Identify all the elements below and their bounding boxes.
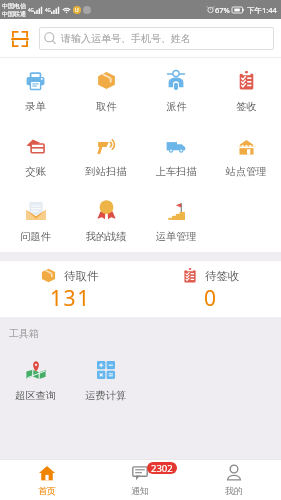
- staticText: U: [75, 7, 79, 14]
- staticText: 上车扫描: [155, 165, 197, 178]
- staticText: 2302: [151, 462, 173, 474]
- staticText: 工具箱: [9, 327, 39, 340]
- staticText: 派件: [166, 100, 187, 113]
- staticText: 问题件: [20, 230, 51, 243]
- button[interactable]: 签收: [211, 71, 281, 136]
- button[interactable]: 派件: [141, 71, 211, 136]
- button[interactable]: 录单: [0, 71, 71, 136]
- button[interactable]: 运费计算: [71, 359, 141, 402]
- staticText: 4G: [45, 7, 51, 13]
- staticText: 运单管理: [155, 230, 197, 243]
- staticText: 请输入运单号、手机号、姓名: [61, 32, 191, 45]
- staticText: 超区查询: [15, 389, 57, 402]
- button[interactable]: 取件: [71, 71, 141, 136]
- button[interactable]: 待取件: [0, 261, 140, 317]
- staticText: 签收: [236, 100, 257, 113]
- staticText: 0: [204, 284, 218, 313]
- staticText: 4G: [28, 7, 34, 13]
- staticText: 首页: [38, 485, 56, 496]
- staticText: 到站扫描: [85, 165, 127, 178]
- button[interactable]: 请输入运单号、手机号、姓名: [39, 27, 274, 50]
- staticText: 131: [50, 284, 91, 313]
- button[interactable]: Scan barcode: [0, 19, 39, 58]
- button[interactable]: 交账: [0, 136, 71, 201]
- button[interactable]: 问题件: [0, 201, 71, 252]
- button[interactable]: 我的战绩: [71, 201, 141, 252]
- staticText: 交账: [25, 165, 46, 178]
- button[interactable]: 2302: [93, 459, 187, 500]
- button[interactable]: 上车扫描: [141, 136, 211, 201]
- staticText: 站点管理: [225, 165, 267, 178]
- staticText: 67%: [215, 5, 230, 15]
- staticText: 录单: [25, 100, 46, 113]
- staticText: 运费计算: [85, 389, 127, 402]
- button[interactable]: 我的: [187, 459, 281, 500]
- button[interactable]: 运单管理: [141, 201, 211, 252]
- staticText: 待取件: [64, 269, 99, 283]
- button[interactable]: 待签收: [140, 261, 281, 317]
- staticText: 中国联通: [2, 10, 26, 18]
- staticText: 待签收: [205, 269, 240, 283]
- button[interactable]: 首页: [0, 459, 93, 500]
- staticText: 下午1:44: [247, 5, 277, 15]
- staticText: 取件: [96, 100, 117, 113]
- staticText: 我的: [225, 485, 243, 496]
- staticText: 通知: [131, 485, 149, 496]
- staticText: 我的战绩: [85, 230, 127, 243]
- button[interactable]: 超区查询: [0, 359, 71, 402]
- staticText: 中国电信: [2, 2, 26, 10]
- button[interactable]: 到站扫描: [71, 136, 141, 201]
- button[interactable]: 站点管理: [211, 136, 281, 201]
